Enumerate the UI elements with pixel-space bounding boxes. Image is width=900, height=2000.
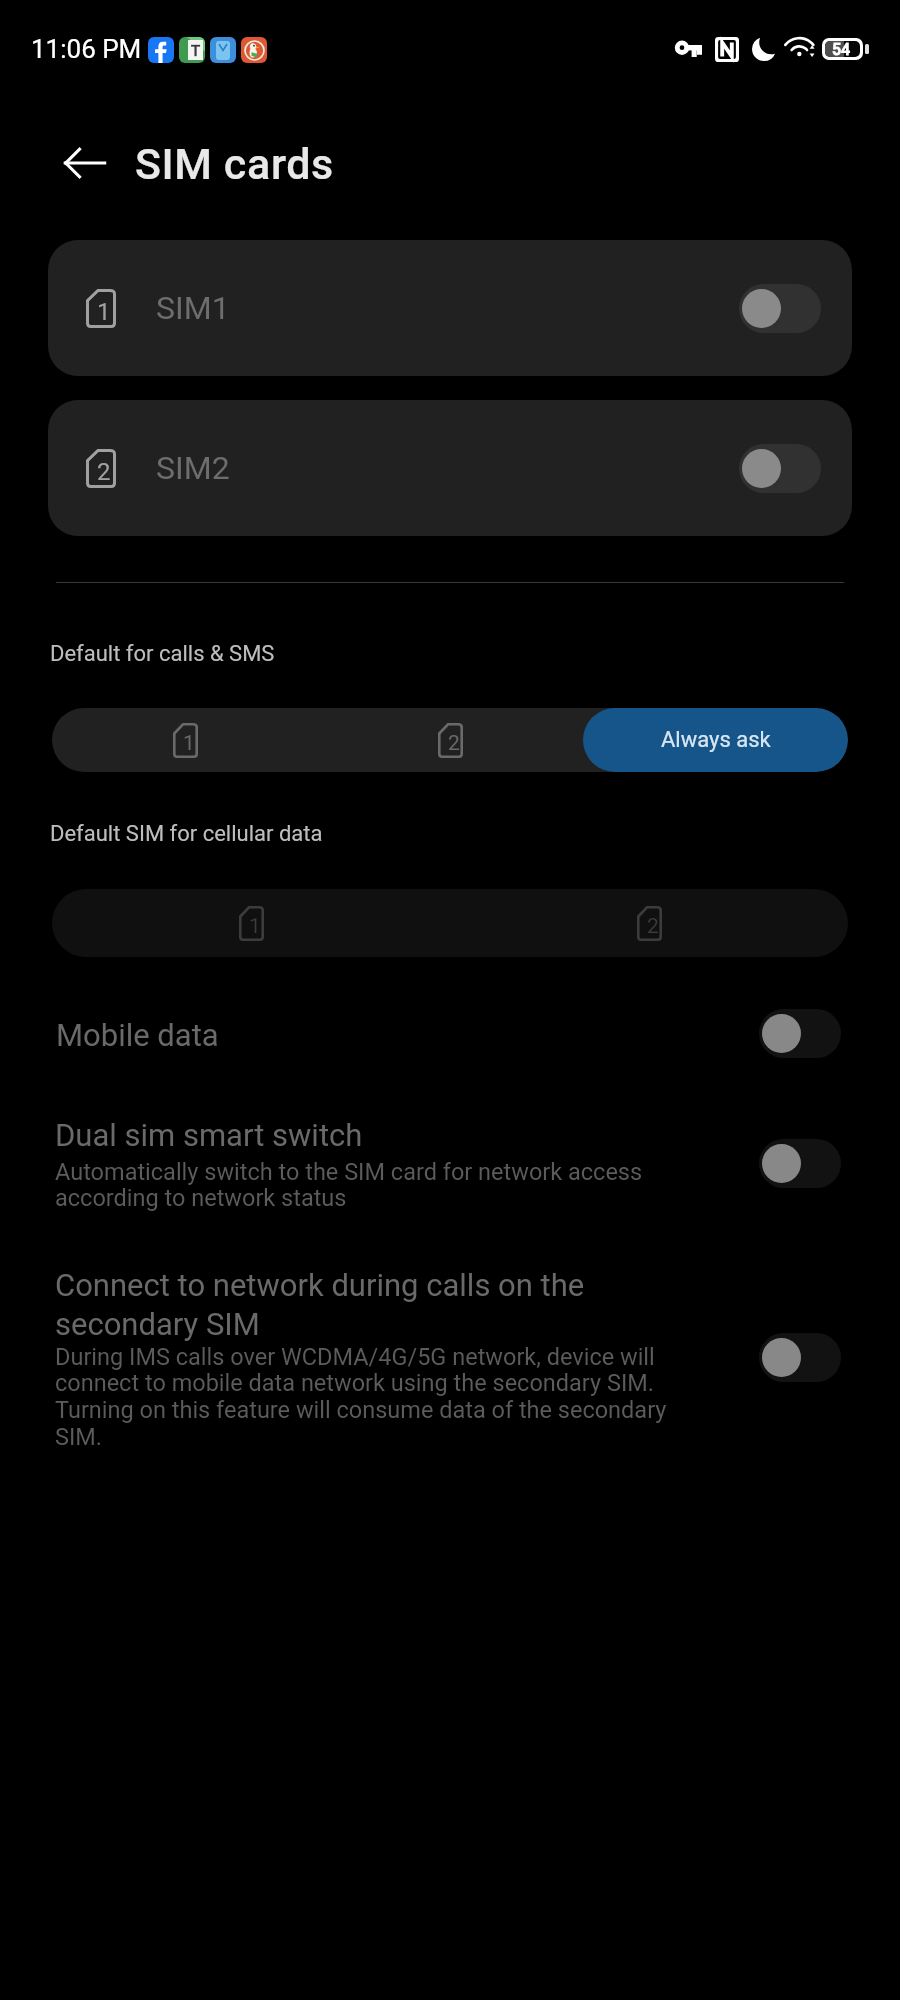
button[interactable]: Toggle xyxy=(759,1333,841,1382)
staticText: 1 xyxy=(97,298,111,326)
button[interactable]: Always ask xyxy=(583,708,848,772)
button[interactable]: Toggle xyxy=(739,284,821,333)
button[interactable]: Toggle xyxy=(759,1139,841,1188)
staticText: 11:06 PM xyxy=(31,34,142,64)
staticText: Dual sim smart switch xyxy=(55,1117,363,1153)
button[interactable]: 2 xyxy=(48,400,852,536)
staticText: Connect to network during calls on the s… xyxy=(55,1267,670,1342)
button[interactable]: SIM 1 xyxy=(52,889,450,957)
staticText: During IMS calls over WCDMA/4G/5G networ… xyxy=(55,1343,670,1451)
staticText: 54 xyxy=(832,40,851,59)
staticText: T xyxy=(191,42,201,60)
button[interactable]: Toggle xyxy=(759,1009,841,1058)
staticText: Default SIM for cellular data xyxy=(50,821,323,847)
button[interactable]: SIM 2 xyxy=(450,889,848,957)
staticText: 1 xyxy=(249,914,261,939)
button[interactable]: Back xyxy=(59,137,111,189)
button[interactable]: SIM 2 xyxy=(318,708,583,772)
button[interactable]: 1 xyxy=(48,240,852,376)
staticText: 2 xyxy=(647,914,659,939)
staticText: 2 xyxy=(448,731,460,756)
button[interactable]: SIM 1 xyxy=(52,708,318,772)
staticText: SIM cards xyxy=(135,139,334,189)
staticText: SIM1 xyxy=(156,289,230,327)
staticText: Always ask xyxy=(661,727,771,753)
staticText: SIM2 xyxy=(156,449,230,487)
staticText: Mobile data xyxy=(56,1017,219,1053)
staticText: 1 xyxy=(183,731,195,756)
staticText: Default for calls & SMS xyxy=(50,641,275,667)
button[interactable]: Toggle xyxy=(739,444,821,493)
staticText: 2 xyxy=(97,458,111,486)
staticText: Automatically switch to the SIM card for… xyxy=(55,1158,670,1212)
